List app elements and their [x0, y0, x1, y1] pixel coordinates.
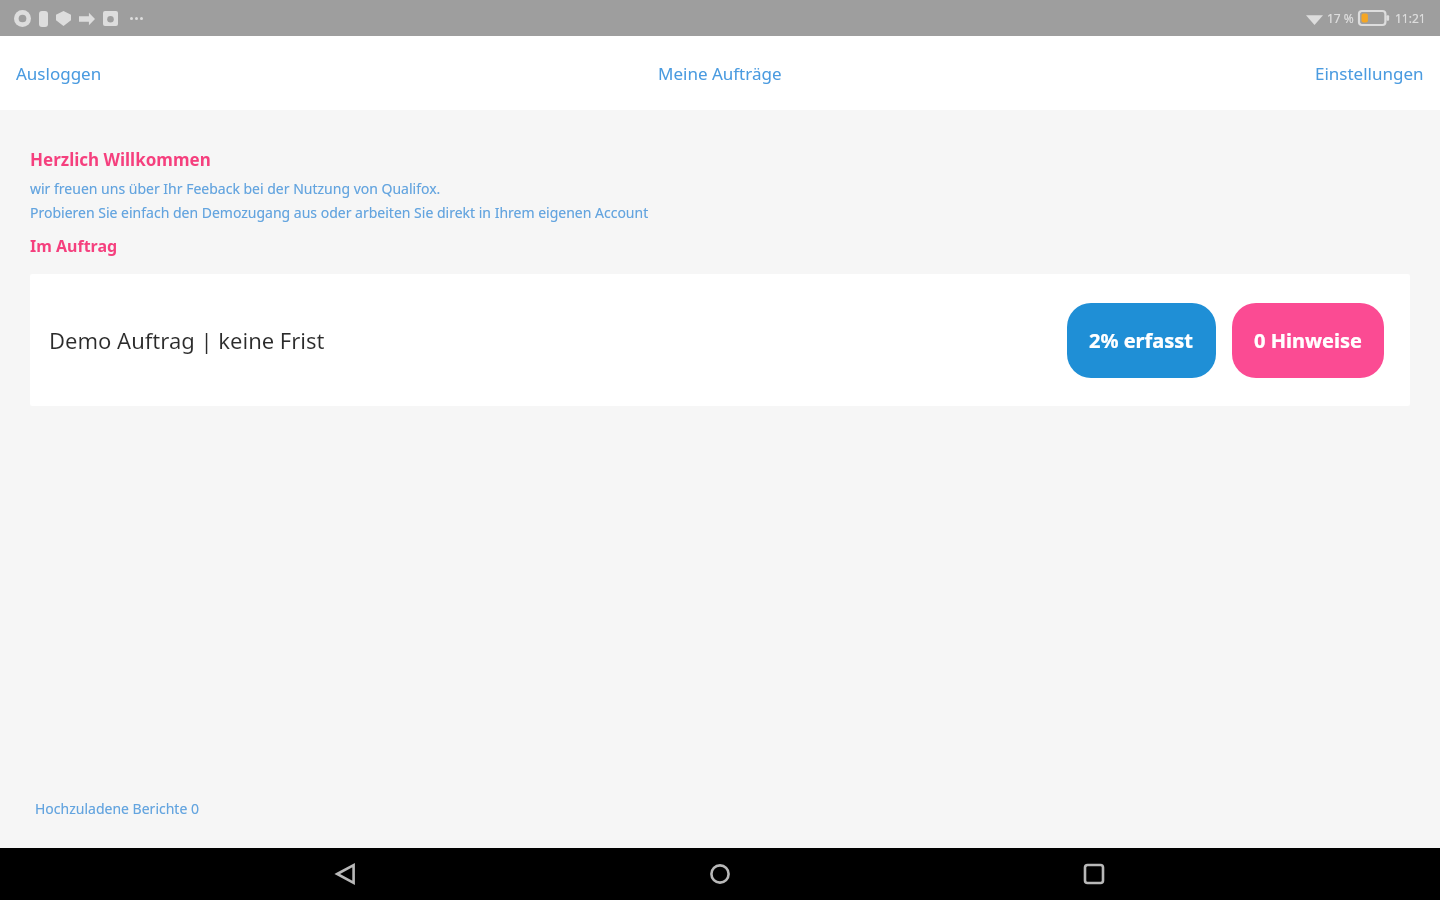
staticText: Im Auftrag — [30, 235, 118, 257]
staticText: 2% erfasst — [1089, 327, 1194, 354]
staticText: Demo Auftrag | keine Frist — [49, 325, 325, 355]
staticText: Meine Aufträge — [658, 62, 782, 85]
button[interactable]: Einstellungen — [1299, 52, 1440, 95]
button[interactable]: Home — [692, 848, 748, 900]
staticText: Einstellungen — [1315, 62, 1424, 85]
button[interactable]: 0 Hinweise — [1232, 303, 1384, 378]
staticText: Probieren Sie einfach den Demozugang aus… — [30, 203, 649, 222]
button[interactable]: Demo Auftrag | keine Frist — [30, 274, 1410, 406]
staticText: 17 % — [1327, 10, 1354, 26]
staticText: wir freuen uns über Ihr Feeback bei der … — [30, 179, 441, 198]
staticText: Ausloggen — [16, 62, 102, 85]
staticText: Hochzuladene Berichte 0 — [35, 799, 199, 818]
staticText: 0 Hinweise — [1254, 327, 1362, 354]
staticText: Herzlich Willkommen — [30, 148, 211, 171]
button[interactable]: Meine Aufträge — [642, 52, 798, 95]
button[interactable]: Back — [318, 848, 374, 900]
button[interactable]: Recent apps — [1066, 848, 1122, 900]
button[interactable]: Ausloggen — [0, 52, 118, 95]
button[interactable]: 2% erfasst — [1067, 303, 1216, 378]
staticText: 11:21 — [1395, 10, 1426, 26]
